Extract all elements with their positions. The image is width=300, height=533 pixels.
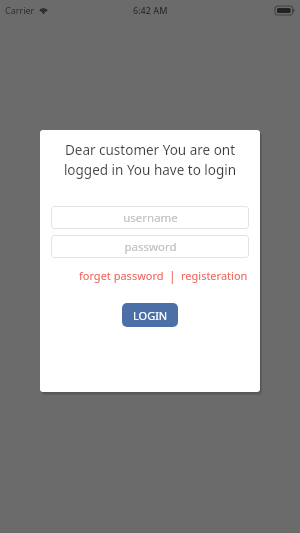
staticText: LOGIN xyxy=(133,308,168,323)
staticText: | xyxy=(169,268,176,284)
staticText: Dear customer You are ont logged in You … xyxy=(51,141,249,179)
staticText: forget password xyxy=(79,268,164,283)
staticText: Carrier xyxy=(5,4,35,16)
button[interactable]: LOGIN xyxy=(122,303,178,327)
staticText: 6:42 AM xyxy=(133,4,168,16)
button[interactable]: password xyxy=(51,235,249,258)
button[interactable]: username xyxy=(51,206,249,229)
staticText: registeration xyxy=(181,268,248,283)
button[interactable]: forget password xyxy=(78,266,165,285)
staticText: username xyxy=(123,210,178,226)
button[interactable]: registeration xyxy=(180,266,249,285)
staticText: password xyxy=(124,239,177,255)
